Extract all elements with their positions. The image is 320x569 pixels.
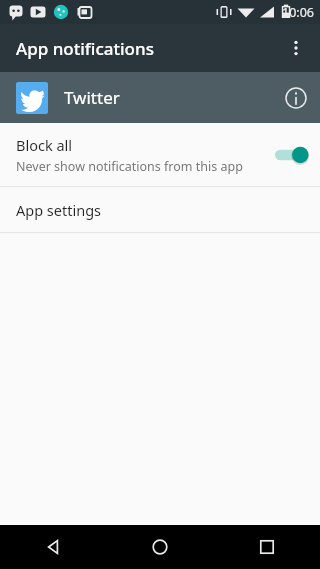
button[interactable]: More options [272,24,320,72]
button[interactable]: App settings [0,187,320,232]
staticText: 10:06 [282,4,314,21]
button[interactable]: App info [272,74,320,122]
staticText: Never show notifications from this app [16,158,243,175]
staticText: App settings [16,200,102,220]
button[interactable]: Recent apps [213,525,320,569]
button[interactable]: Block all toggle [264,131,320,179]
staticText: App notifications [16,37,154,60]
staticText: Twitter [64,86,272,109]
button[interactable]: Home [106,525,213,569]
button[interactable]: Block all [0,123,320,186]
staticText: Block all [16,135,73,155]
button[interactable]: Back [0,525,106,569]
button[interactable]: Twitter [0,72,320,123]
